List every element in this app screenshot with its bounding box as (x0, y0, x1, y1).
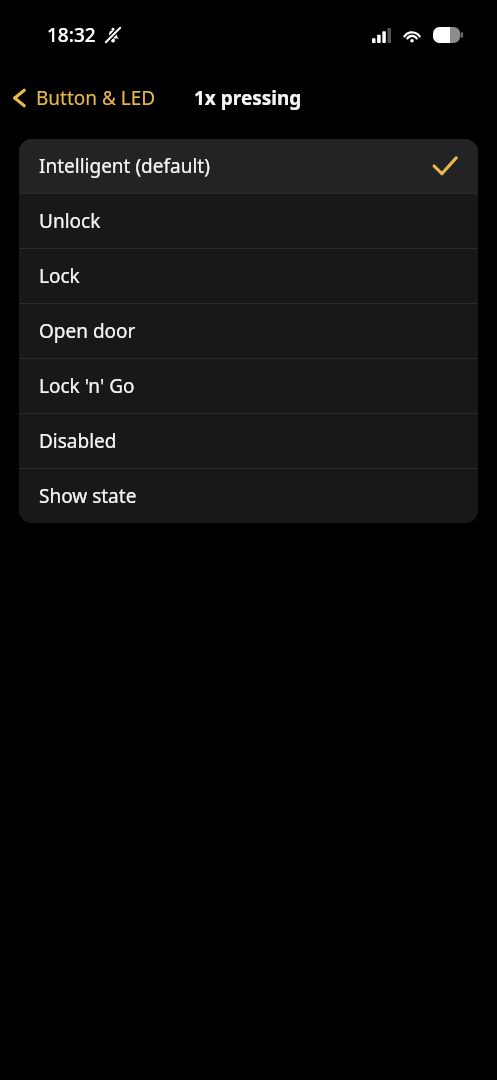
other: Selected (432, 155, 458, 177)
staticText: Intelligent (default) (39, 153, 210, 179)
button[interactable]: Open door (19, 304, 478, 358)
staticText: Button & LED (36, 85, 156, 111)
staticText: Open door (39, 318, 136, 344)
button[interactable]: Intelligent (default) (19, 139, 478, 193)
staticText: 1x pressing (194, 85, 302, 111)
button[interactable]: Lock 'n' Go (19, 359, 478, 413)
staticText: Disabled (39, 428, 117, 454)
staticText: 18:32 (47, 22, 96, 48)
button[interactable]: Lock (19, 249, 478, 303)
button[interactable]: Disabled (19, 414, 478, 468)
staticText: Show state (39, 483, 137, 509)
button[interactable]: Unlock (19, 194, 478, 248)
staticText: Lock 'n' Go (39, 373, 135, 399)
button[interactable]: Button & LED (0, 79, 166, 117)
staticText: Lock (39, 263, 80, 289)
button[interactable]: Show state (19, 469, 478, 523)
staticText: Unlock (39, 208, 101, 234)
